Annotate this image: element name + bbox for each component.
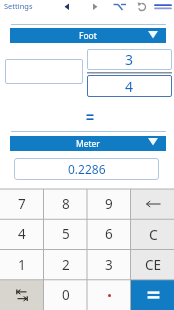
staticText: 1 (18, 256, 26, 274)
staticText: 9 (105, 195, 113, 213)
button[interactable] (0, 280, 44, 310)
button[interactable]: C (131, 219, 174, 249)
staticText: 6 (105, 225, 113, 243)
button[interactable] (131, 189, 174, 219)
button[interactable]: Settings (4, 1, 33, 11)
button[interactable]: 6 (87, 219, 131, 249)
button[interactable]: 2 (44, 250, 88, 280)
button[interactable]: 1 (0, 250, 44, 280)
button[interactable]: 4 (87, 75, 172, 97)
button[interactable] (131, 280, 174, 310)
button[interactable] (5, 59, 83, 84)
button[interactable]: Foot (10, 28, 166, 43)
staticText: 3 (125, 50, 134, 69)
button[interactable]: 5 (44, 219, 88, 249)
button[interactable]: 8 (44, 189, 88, 219)
staticText: 4 (18, 225, 26, 243)
staticText: 8 (62, 195, 70, 213)
staticText: 3 (105, 256, 113, 274)
button[interactable]: Meter (10, 136, 166, 151)
staticText: 2 (62, 256, 70, 274)
button[interactable]: 3 (87, 250, 131, 280)
button[interactable]: 0.2286 (14, 158, 159, 180)
button[interactable] (87, 280, 131, 310)
button[interactable]: 7 (0, 189, 44, 219)
button[interactable]: 3 (87, 49, 172, 70)
staticText: Settings (4, 1, 33, 11)
staticText: CE (145, 256, 162, 274)
staticText: 0 (62, 286, 70, 304)
button[interactable]: 9 (87, 189, 131, 219)
staticText: 7 (18, 195, 26, 213)
staticText: Foot (79, 30, 97, 42)
staticText: 0.2286 (68, 161, 106, 177)
button[interactable]: CE (131, 250, 174, 280)
button[interactable]: 0 (44, 280, 88, 310)
staticText: 5 (62, 225, 70, 243)
button[interactable]: 4 (0, 219, 44, 249)
staticText: Meter (76, 138, 100, 150)
staticText: C (149, 225, 158, 244)
staticText: 4 (125, 77, 134, 96)
